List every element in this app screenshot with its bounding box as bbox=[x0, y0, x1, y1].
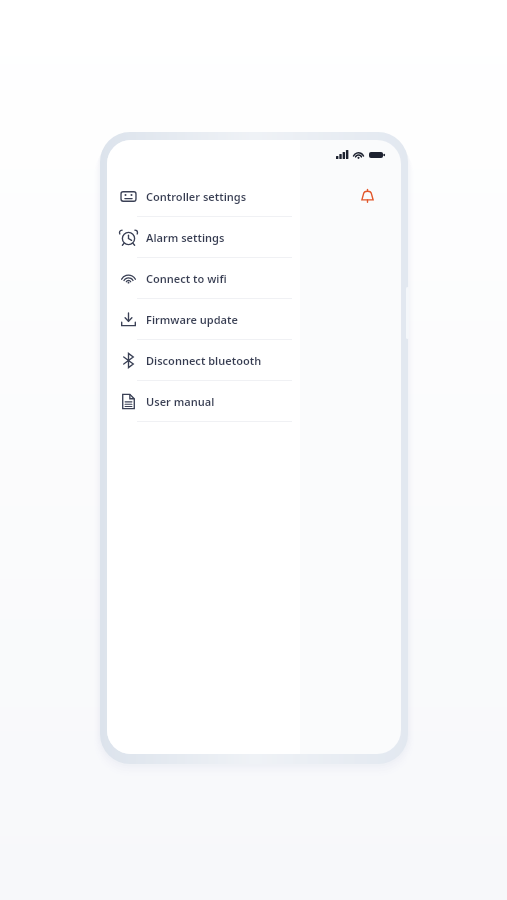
staticText: Alarm settings bbox=[146, 230, 225, 245]
button[interactable]: Disconnect bluetooth bbox=[107, 340, 300, 380]
button[interactable]: Connect to wifi bbox=[107, 258, 300, 298]
staticText: Disconnect bluetooth bbox=[146, 353, 262, 368]
button[interactable]: Notifications bbox=[354, 183, 380, 209]
button[interactable]: Controller settings bbox=[107, 176, 300, 216]
staticText: Firmware update bbox=[146, 312, 238, 327]
button[interactable]: Firmware update bbox=[107, 299, 300, 339]
staticText: Connect to wifi bbox=[146, 271, 227, 286]
staticText: Controller settings bbox=[146, 189, 247, 204]
button[interactable]: User manual bbox=[107, 381, 300, 421]
button[interactable]: Alarm settings bbox=[107, 217, 300, 257]
staticText: User manual bbox=[146, 394, 215, 409]
